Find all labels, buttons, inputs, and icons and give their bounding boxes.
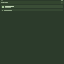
staticText: 9:41	[1, 0, 3, 1]
button[interactable]	[1, 5, 63, 8]
button[interactable]	[1, 9, 63, 11]
button[interactable]: Search	[61, 2, 63, 4]
staticText: Garden	[1, 1, 9, 4]
